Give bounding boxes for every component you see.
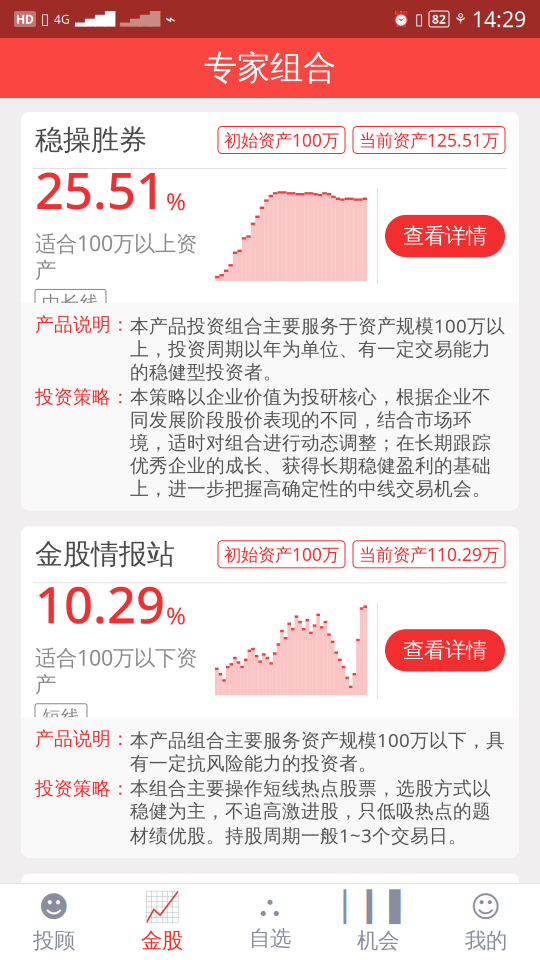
staticText: ▂▄▆█	[120, 11, 160, 26]
button[interactable]: 查看详情	[385, 215, 505, 257]
button[interactable]: ⛬	[216, 884, 324, 960]
button[interactable]: ☺	[432, 884, 540, 960]
staticText: ▯	[41, 11, 49, 27]
staticText: 自选	[249, 925, 291, 951]
staticText: 金股情报站	[35, 537, 175, 571]
staticText: 查看详情	[403, 223, 487, 249]
staticText: 当前资产110.29万	[359, 543, 499, 566]
staticText: 本策略以企业价值为投研核心，根据企业不同发展阶段股价表现的不同，结合市场环境，适…	[130, 386, 491, 500]
staticText: 适合100万以上资产	[35, 229, 197, 283]
staticText: 初始资产100万	[224, 128, 339, 151]
staticText: ⏰	[392, 11, 410, 27]
button[interactable]: 📈	[108, 884, 216, 960]
staticText: 10.29	[35, 570, 165, 637]
button[interactable]: ▏▎▌	[324, 884, 432, 960]
staticText: HD	[16, 11, 34, 27]
staticText: 本产品组合主要服务资产规模100万以下，具有一定抗风险能力的投资者。	[130, 727, 505, 775]
staticText: 中长线	[42, 291, 99, 314]
staticText: ▯	[415, 10, 424, 28]
staticText: 当前资产125.51万	[359, 128, 499, 151]
staticText: ▂▄▆█	[75, 11, 115, 26]
staticText: 专家组合	[204, 47, 336, 88]
staticText: 适合100万以下资产	[35, 643, 197, 698]
staticText: ⚘	[454, 11, 467, 27]
staticText: 当前资产109.16万	[359, 890, 499, 913]
staticText: 投资策略：	[35, 386, 130, 408]
staticText: 投资策略：	[35, 777, 130, 800]
staticText: 产品说明：	[35, 727, 130, 750]
staticText: 机构操盘	[35, 884, 147, 919]
staticText: 我的	[465, 927, 507, 954]
staticText: 📈	[143, 890, 180, 924]
staticText: ⌁	[165, 9, 175, 29]
staticText: %	[166, 599, 186, 631]
staticText: 初始资产100万	[224, 543, 339, 566]
staticText: 25.51	[35, 156, 165, 223]
staticText: 机会	[357, 927, 399, 954]
staticText: %	[166, 185, 186, 217]
staticText: 稳操胜券	[35, 123, 147, 157]
staticText: 4G	[54, 11, 70, 27]
button[interactable]: ☻	[0, 884, 108, 960]
staticText: 初始资产100万	[224, 890, 339, 913]
staticText: 本产品投资组合主要服务于资产规模100万以上，投资周期以年为单位、有一定交易能力…	[130, 313, 505, 384]
staticText: 金股	[141, 928, 183, 954]
staticText: ▏▎▌	[343, 890, 412, 924]
button[interactable]: 查看详情	[385, 629, 505, 671]
staticText: ☺	[470, 890, 501, 924]
staticText: ☻	[38, 890, 69, 924]
staticText: 82	[432, 11, 446, 27]
staticText: ⛬	[259, 893, 280, 921]
staticText: 短线	[42, 706, 80, 729]
staticText: 产品说明：	[35, 313, 130, 336]
staticText: 本组合主要操作短线热点股票，选股方式以稳健为主，不追高激进股，只低吸热点的题材绩…	[130, 777, 491, 848]
staticText: 投顾	[33, 927, 75, 954]
staticText: 查看详情	[403, 637, 487, 663]
staticText: 14:29	[472, 5, 526, 33]
